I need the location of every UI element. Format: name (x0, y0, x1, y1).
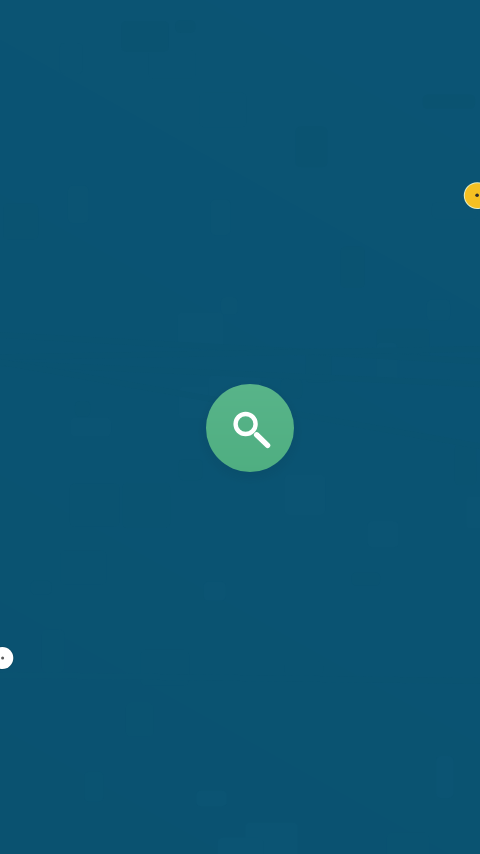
button[interactable]: Search this area (206, 384, 294, 472)
